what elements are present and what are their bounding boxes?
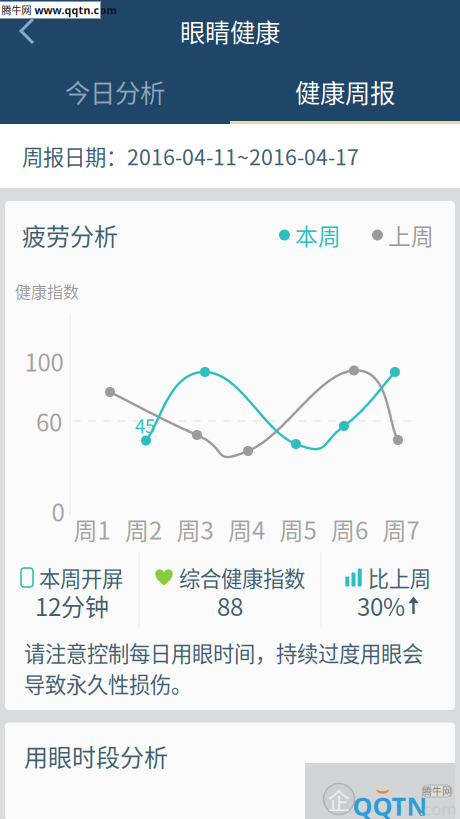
staticText: 疲劳分析	[22, 218, 118, 252]
staticText: www.qqtn.com	[34, 3, 116, 17]
staticText: .com	[419, 798, 456, 819]
staticText: 健康指数	[15, 279, 79, 303]
staticText: 周2	[125, 512, 162, 546]
staticText: 本周	[295, 219, 341, 251]
staticText: 眼睛健康	[180, 13, 280, 49]
staticText: 周6	[331, 512, 368, 546]
button[interactable]: 健康周报	[230, 62, 460, 124]
staticText: 比上周	[368, 562, 431, 593]
staticText: 企	[327, 783, 350, 815]
staticText: 周3	[176, 512, 213, 546]
staticText: 腾牛网	[1, 3, 31, 17]
staticText: 12分钟	[35, 588, 109, 623]
staticText: 0	[51, 494, 64, 528]
staticText: ⌣	[375, 779, 390, 801]
staticText: 上周	[388, 219, 434, 251]
button[interactable]: 返回	[0, 0, 54, 62]
staticText: 今日分析	[65, 73, 165, 110]
staticText: 60	[36, 404, 62, 438]
staticText: 本周开屏	[39, 562, 123, 593]
staticText: 腾牛网	[422, 784, 452, 798]
staticText: 综合健康指数	[179, 562, 305, 593]
staticText: QQTN	[352, 789, 427, 819]
staticText: 30%	[357, 588, 405, 623]
staticText: 45	[135, 411, 155, 438]
staticText: 周7	[382, 512, 419, 546]
staticText: 100	[24, 344, 63, 378]
staticText: 周1	[73, 512, 110, 546]
staticText: 周报日期：2016-04-11~2016-04-17	[22, 141, 359, 171]
staticText: 88	[217, 588, 243, 623]
staticText: 周4	[228, 512, 265, 546]
button[interactable]: 今日分析	[0, 62, 230, 124]
staticText: 周5	[279, 512, 316, 546]
staticText: 请注意控制每日用眼时间，持续过度用眼会 导致永久性损伤。	[24, 637, 423, 699]
staticText: 健康周报	[295, 73, 395, 110]
staticText: 用眼时段分析	[24, 739, 168, 773]
